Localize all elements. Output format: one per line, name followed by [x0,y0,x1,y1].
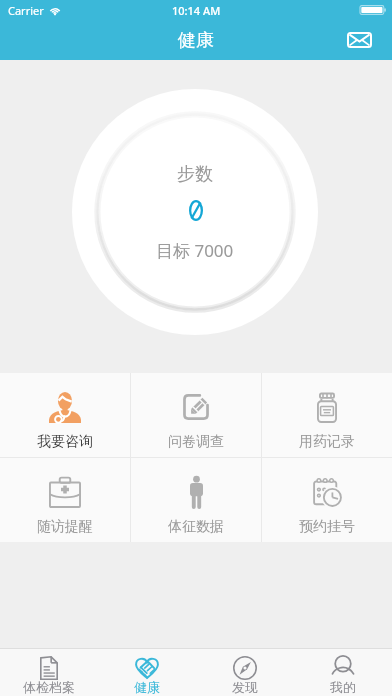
staticText: 我要咨询 [37,433,93,451]
staticText: 健康 [134,679,160,695]
button[interactable]: 我要咨询 [0,373,130,457]
button[interactable]: Messages [340,21,378,59]
staticText: 体检档案 [23,679,75,695]
button[interactable]: 随访提醒 [0,458,130,542]
button[interactable]: 发现 [196,649,294,696]
button[interactable]: 体检档案 [0,649,98,696]
staticText: 体征数据 [168,518,224,536]
staticText: 我的 [330,679,356,695]
staticText: 预约挂号 [299,518,355,536]
staticText: 步数 [177,163,213,186]
button[interactable]: 体征数据 [131,458,261,542]
staticText: 问卷调查 [168,433,224,451]
staticText: 随访提醒 [37,518,93,536]
staticText: 用药记录 [299,433,355,451]
staticText: Carrier [8,3,44,18]
button[interactable]: 健康 [98,649,196,696]
button[interactable]: 问卷调查 [131,373,261,457]
button[interactable]: 我的 [294,649,392,696]
button[interactable]: 用药记录 [262,373,392,457]
staticText: 目标 7000 [156,239,234,262]
staticText: 健康 [178,29,214,52]
staticText: 发现 [232,679,258,695]
staticText: 10:14 AM [172,3,221,18]
button[interactable]: 预约挂号 [262,458,392,542]
